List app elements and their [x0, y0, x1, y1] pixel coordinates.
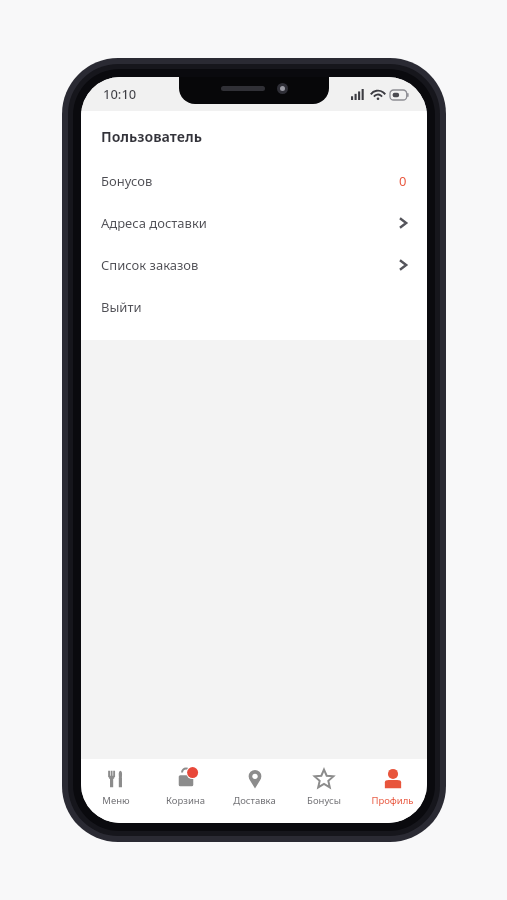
staticText: 0 [399, 172, 407, 190]
staticText: Доставка [233, 794, 276, 807]
button[interactable]: Адреса доставки [81, 202, 427, 244]
staticText: Адреса доставки [101, 214, 207, 232]
button[interactable]: Бонусов [81, 160, 427, 202]
staticText: Профиль [371, 794, 414, 807]
staticText: Корзина [166, 794, 205, 807]
button[interactable]: Доставка [220, 759, 289, 823]
staticText: Выйти [101, 298, 142, 316]
staticText: Меню [102, 794, 130, 807]
button[interactable]: Корзина [151, 759, 220, 823]
staticText: 10:10 [103, 85, 137, 103]
button[interactable]: Бонусы [289, 759, 358, 823]
button[interactable]: Меню [81, 759, 151, 823]
staticText: Бонусы [307, 794, 341, 807]
button[interactable]: Выйти [81, 286, 427, 328]
staticText: Пользователь [101, 127, 202, 146]
button[interactable]: Список заказов [81, 244, 427, 286]
staticText: Список заказов [101, 256, 199, 274]
staticText: Бонусов [101, 172, 153, 190]
button[interactable]: Профиль [358, 759, 427, 823]
